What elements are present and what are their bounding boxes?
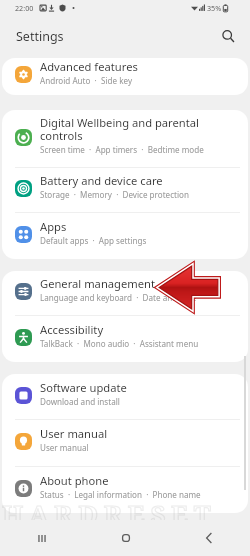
staticText: 22:00 xyxy=(15,3,34,13)
staticText: User manual xyxy=(40,442,89,453)
button[interactable]: Digital Wellbeing and parental controls xyxy=(2,110,248,168)
staticText: Battery and device care xyxy=(40,175,163,188)
staticText: User manual xyxy=(40,428,108,441)
button[interactable]: Advanced features xyxy=(2,58,248,95)
button[interactable]: General management xyxy=(2,271,248,316)
staticText: Status · Legal information · Phone name xyxy=(40,489,201,500)
button[interactable]: Software update xyxy=(2,374,248,420)
staticText: About phone xyxy=(40,475,109,488)
button[interactable]: Search xyxy=(217,25,239,47)
staticText: TalkBack · Mono audio · Assistant menu xyxy=(40,338,199,349)
staticText: Screen time · App timers · Bedtime mode xyxy=(40,144,204,155)
staticText: Advanced features xyxy=(40,61,138,74)
button[interactable]: Accessibility xyxy=(2,316,248,362)
staticText: General management xyxy=(40,278,155,291)
button[interactable]: Battery and device care xyxy=(2,168,248,213)
staticText: 35% xyxy=(207,3,222,13)
button[interactable]: About phone xyxy=(2,467,248,513)
other: Pointer arrow xyxy=(156,263,221,312)
staticText: Download and install xyxy=(40,396,120,407)
staticText: HARDRESET xyxy=(2,496,217,531)
staticText: Default apps · App settings xyxy=(40,235,147,246)
staticText: Accessibility xyxy=(40,324,104,337)
button[interactable]: Recent apps xyxy=(0,520,84,556)
staticText: Software update xyxy=(40,382,127,395)
button[interactable]: Home xyxy=(84,520,167,556)
staticText: Language and keyboard · Date and time xyxy=(40,292,197,303)
staticText: Apps xyxy=(40,221,67,234)
staticText: INFO xyxy=(179,516,215,534)
staticText: Digital Wellbeing and parental controls xyxy=(40,117,199,143)
button[interactable]: User manual xyxy=(2,420,248,467)
staticText: Storage · Memory · Device protection xyxy=(40,189,189,200)
button[interactable]: Apps xyxy=(2,213,248,259)
staticText: Settings xyxy=(16,28,64,45)
button[interactable]: Back xyxy=(167,520,250,556)
staticText: Android Auto · Side key xyxy=(40,75,133,86)
